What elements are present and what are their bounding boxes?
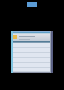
button[interactable] (11, 43, 53, 48)
button[interactable] (11, 68, 53, 72)
button[interactable] (11, 48, 53, 53)
button[interactable] (11, 63, 53, 68)
button[interactable] (11, 58, 53, 63)
button[interactable] (11, 53, 53, 58)
